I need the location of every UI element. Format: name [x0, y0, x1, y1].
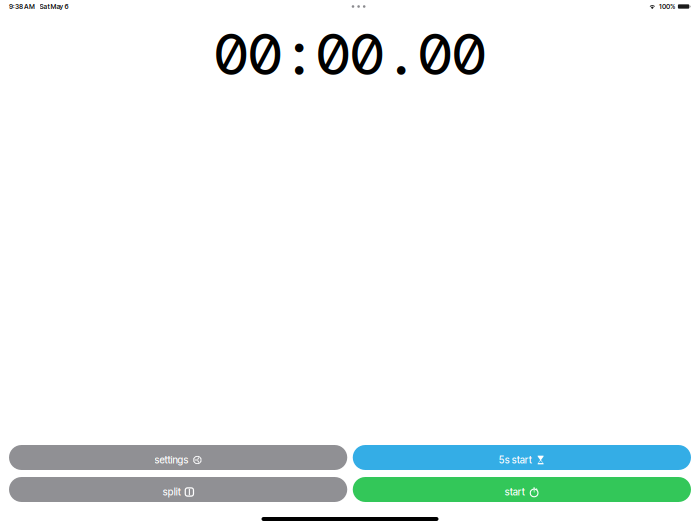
staticText: 100% [659, 2, 675, 11]
button[interactable]: split [9, 477, 347, 502]
staticText: settings [154, 454, 188, 466]
button[interactable]: 5s start [353, 445, 691, 470]
staticText: 9:38 AM [9, 2, 35, 11]
staticText: start [505, 486, 525, 498]
staticText: 5s start [499, 454, 532, 466]
button[interactable]: settings [9, 445, 347, 470]
staticText: split [163, 486, 181, 498]
button[interactable]: start [353, 477, 691, 502]
staticText: Sat May 6 [39, 2, 68, 11]
staticText: 00:00.00 [214, 16, 486, 92]
